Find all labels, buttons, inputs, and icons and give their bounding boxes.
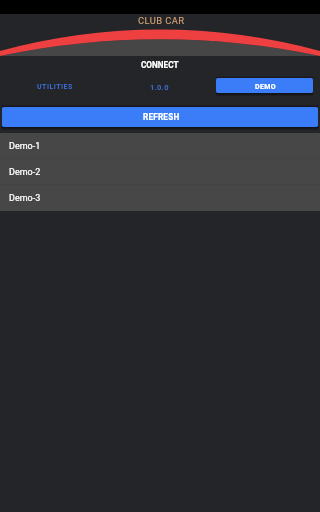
button[interactable]: UTILITIES: [29, 77, 81, 97]
staticText: Demo-2: [9, 167, 41, 178]
staticText: Demo-3: [9, 193, 41, 204]
button[interactable]: Demo-3: [0, 185, 320, 211]
button[interactable]: Demo-1: [0, 133, 320, 159]
staticText: CONNECT: [141, 60, 179, 70]
staticText: Demo-1: [9, 141, 41, 152]
button[interactable]: Demo-2: [0, 159, 320, 185]
button[interactable]: REFRESH: [2, 107, 318, 127]
staticText: DEMO: [255, 83, 277, 91]
staticText: CLUB CAR: [138, 15, 185, 26]
staticText: UTILITIES: [37, 83, 73, 91]
staticText: 1.0.0: [150, 83, 169, 92]
button[interactable]: DEMO: [216, 78, 313, 93]
staticText: REFRESH: [143, 112, 180, 122]
